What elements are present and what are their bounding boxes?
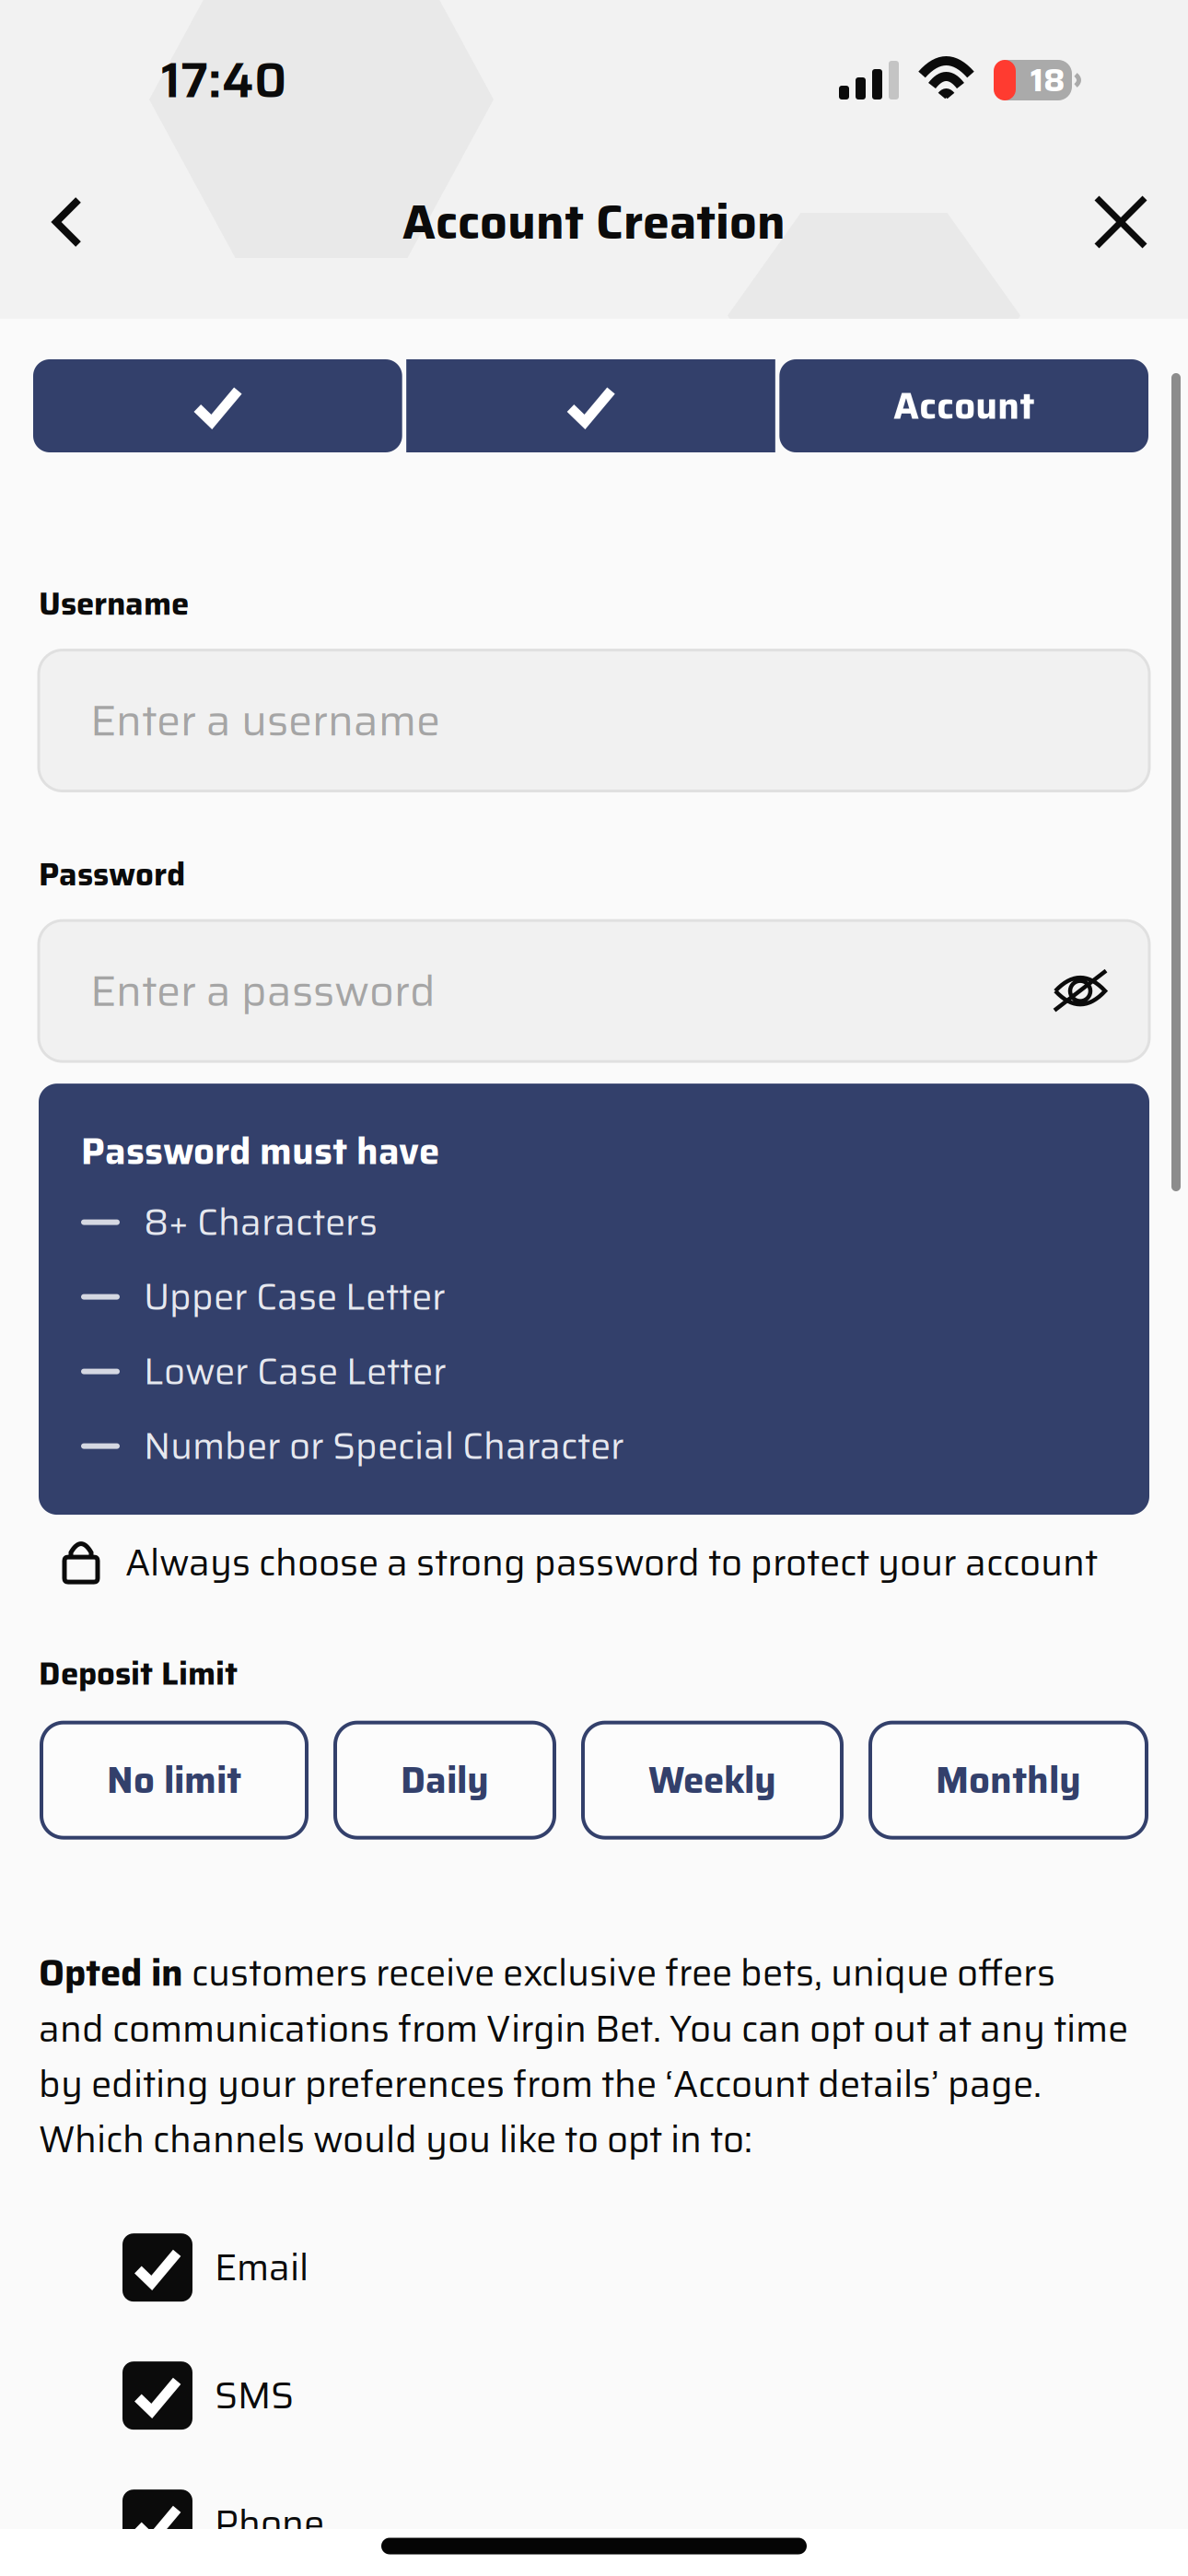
staticText: Enter a password [90,957,436,1025]
button[interactable]: Step 1, completed [33,359,402,452]
button[interactable]: Account, current step [779,359,1148,452]
button[interactable]: Email [39,2204,1149,2332]
staticText: SMS [215,2367,294,2425]
button[interactable]: Monthly [870,1723,1147,1838]
staticText: Account Creation [402,184,786,260]
staticText: Which channels would you like to opt in … [39,2110,752,2169]
staticText: Lower Case Letter [144,1342,447,1400]
button[interactable]: Back [52,171,154,273]
staticText: Username [39,579,189,629]
staticText: Always choose a strong password to prote… [125,1534,1098,1592]
staticText: Monthly [936,1751,1081,1809]
staticText: 18 [1031,55,1066,105]
staticText: Deposit Limit [39,1648,238,1699]
button[interactable]: Step 2, completed [406,359,775,452]
staticText: Account [893,377,1034,435]
staticText: 8+ Characters [144,1193,378,1251]
staticText: Phone [215,2495,324,2553]
staticText: Enter a username [90,687,440,754]
button[interactable]: Close [1046,171,1147,273]
staticText: Password must have [81,1122,439,1180]
staticText: Daily [401,1751,489,1809]
staticText: Weekly [648,1751,776,1809]
staticText: Email [215,2239,309,2297]
button[interactable]: Show password [1052,966,1109,1016]
button[interactable]: Phone [39,2460,1149,2576]
staticText: by editing your preferences from the ‘Ac… [39,2055,1042,2113]
staticText: Password [39,849,185,899]
staticText: and communications from Virgin Bet. You … [39,2000,1128,2058]
button[interactable]: No limit [41,1723,307,1838]
button[interactable]: Weekly [583,1723,842,1838]
button[interactable]: SMS [39,2332,1149,2460]
staticText: Opted in customers receive exclusive fre… [39,1945,1055,2001]
staticText: Upper Case Letter [144,1268,446,1326]
button[interactable]: Daily [335,1723,554,1838]
staticText: Number or Special Character [144,1417,624,1475]
staticText: No limit [107,1751,241,1809]
staticText: 17:40 [161,41,287,119]
